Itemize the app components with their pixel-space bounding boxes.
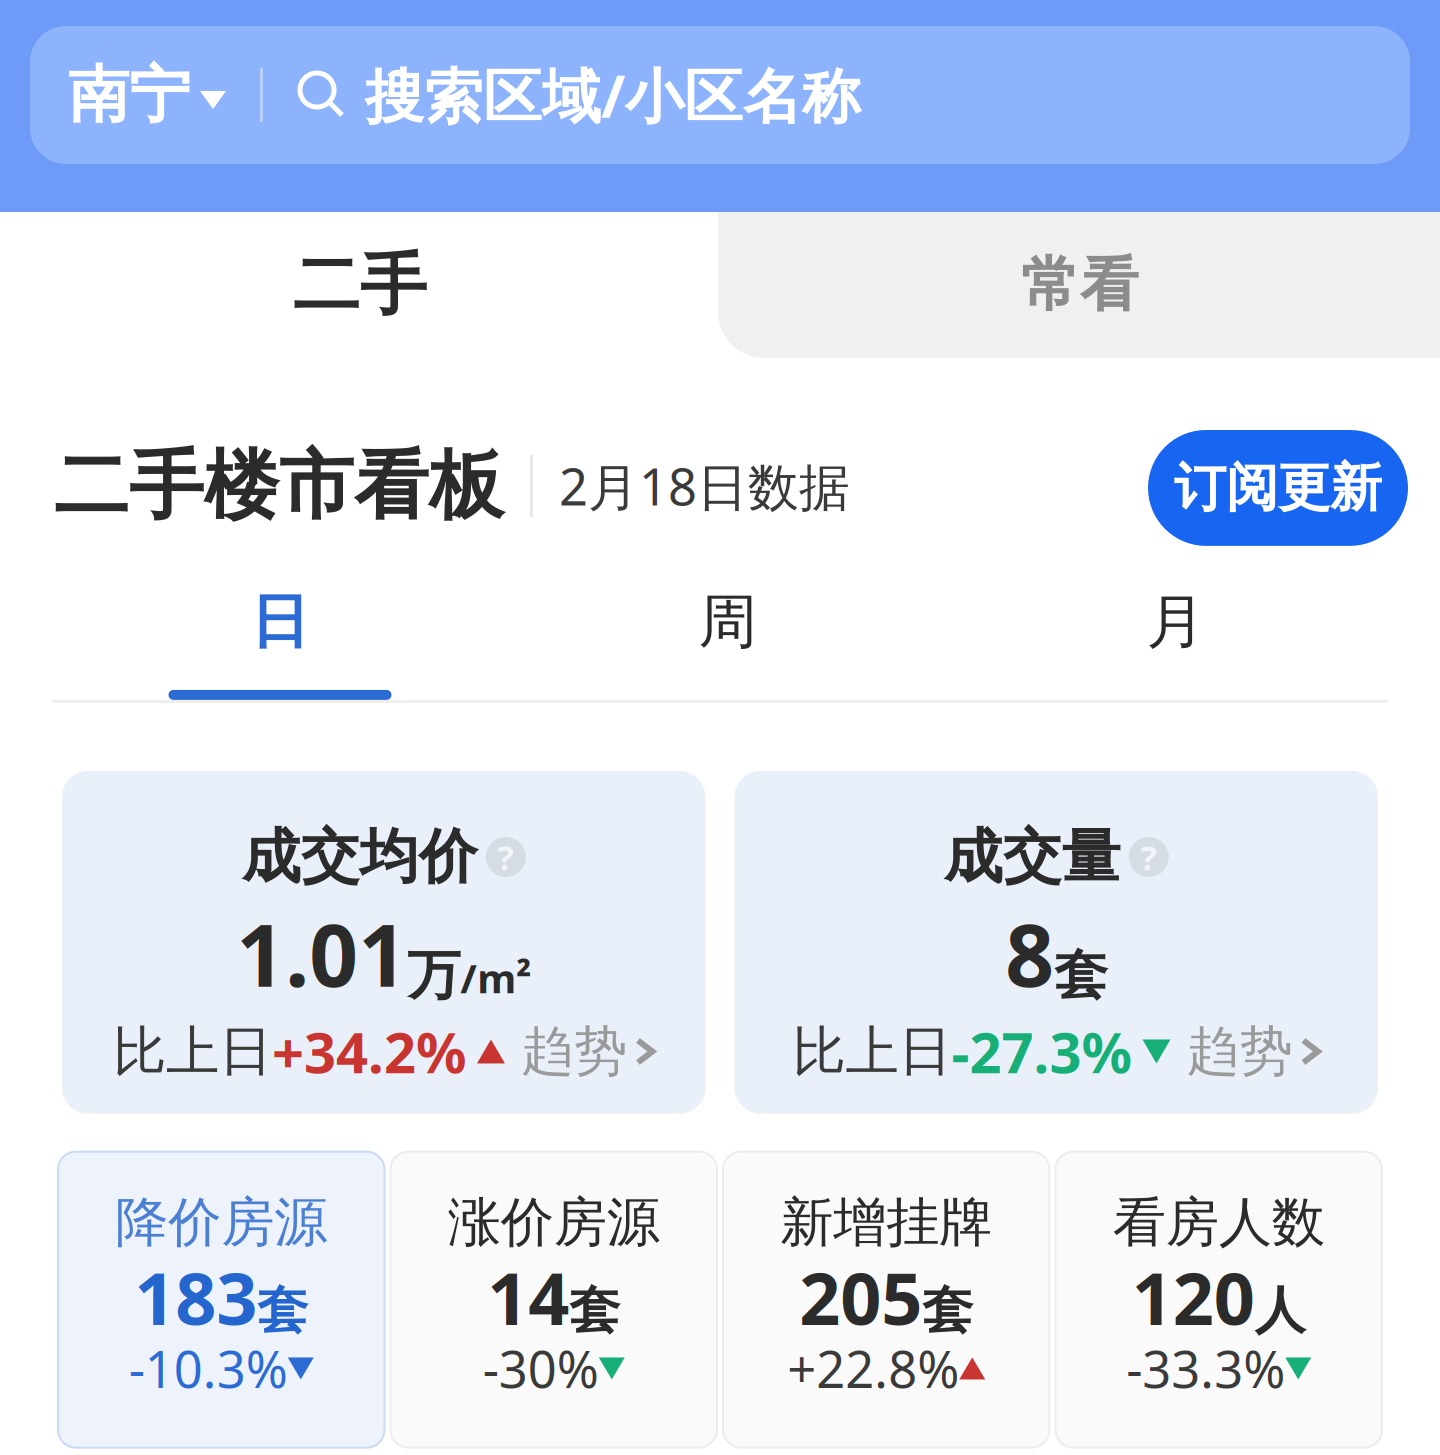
staticText: 套 bbox=[922, 1280, 973, 1342]
staticText: 套 bbox=[569, 1280, 620, 1342]
staticText: 常看 bbox=[1021, 249, 1139, 321]
staticText: 人 bbox=[1255, 1280, 1306, 1342]
button[interactable]: 日 bbox=[56, 586, 504, 700]
button[interactable]: 二手 bbox=[0, 212, 720, 358]
staticText: 搜索区域/小区名称 bbox=[365, 56, 861, 134]
staticText: 二手 bbox=[293, 244, 427, 326]
button[interactable]: 成交均价 bbox=[62, 771, 705, 1114]
button[interactable]: 周 bbox=[504, 586, 952, 700]
staticText: 2月18日数据 bbox=[559, 452, 850, 520]
staticText: 套 bbox=[257, 1280, 308, 1342]
staticText: 比上日 bbox=[792, 1019, 951, 1084]
staticText: 成交量 bbox=[944, 821, 1121, 893]
staticText: -10.3% bbox=[129, 1335, 288, 1402]
staticText: 8 bbox=[1005, 897, 1054, 1010]
staticText: 涨价房源 bbox=[448, 1190, 660, 1255]
staticText: 120 bbox=[1132, 1249, 1255, 1345]
staticText: 月 bbox=[1146, 586, 1205, 658]
staticText: 周 bbox=[698, 586, 757, 658]
staticText: 1.01 bbox=[236, 897, 407, 1010]
staticText: 比上日 bbox=[113, 1019, 272, 1084]
staticText: -30% bbox=[483, 1335, 599, 1402]
staticText: 订阅更新 bbox=[1174, 456, 1382, 520]
staticText: 14 bbox=[487, 1249, 569, 1345]
staticText: -33.3% bbox=[1126, 1335, 1285, 1402]
staticText: 趋势 bbox=[1186, 1019, 1292, 1084]
staticText: +22.8% bbox=[787, 1335, 959, 1402]
staticText: 183 bbox=[134, 1249, 257, 1345]
staticText: 万 bbox=[407, 943, 460, 1008]
staticText: /m² bbox=[460, 951, 531, 1004]
button[interactable]: 成交量 bbox=[734, 771, 1378, 1114]
staticText: -27.3% bbox=[951, 1014, 1132, 1089]
button[interactable]: 看房人数 bbox=[1055, 1152, 1382, 1448]
staticText: 新增挂牌 bbox=[780, 1190, 992, 1255]
staticText: 降价房源 bbox=[115, 1190, 327, 1255]
staticText: 趋势 bbox=[521, 1019, 627, 1084]
button[interactable]: 涨价房源 bbox=[390, 1152, 717, 1448]
button[interactable]: 降价房源 bbox=[58, 1152, 384, 1448]
button[interactable]: 新增挂牌 bbox=[723, 1152, 1049, 1448]
staticText: 205 bbox=[799, 1249, 922, 1345]
button[interactable]: 订阅更新 bbox=[1148, 426, 1408, 546]
staticText: 成交均价 bbox=[242, 821, 478, 893]
button[interactable]: 月 bbox=[952, 586, 1400, 700]
staticText: 看房人数 bbox=[1113, 1190, 1325, 1255]
button[interactable]: 南宁 bbox=[68, 57, 226, 133]
staticText: ? bbox=[497, 834, 514, 880]
staticText: +34.2% bbox=[272, 1014, 467, 1089]
staticText: 二手楼市看板 bbox=[54, 440, 504, 532]
staticText: 南宁 bbox=[68, 57, 190, 133]
button[interactable]: 常看 bbox=[720, 212, 1440, 358]
staticText: 套 bbox=[1054, 943, 1107, 1008]
staticText: 日 bbox=[250, 586, 309, 658]
staticText: ? bbox=[1140, 834, 1157, 880]
